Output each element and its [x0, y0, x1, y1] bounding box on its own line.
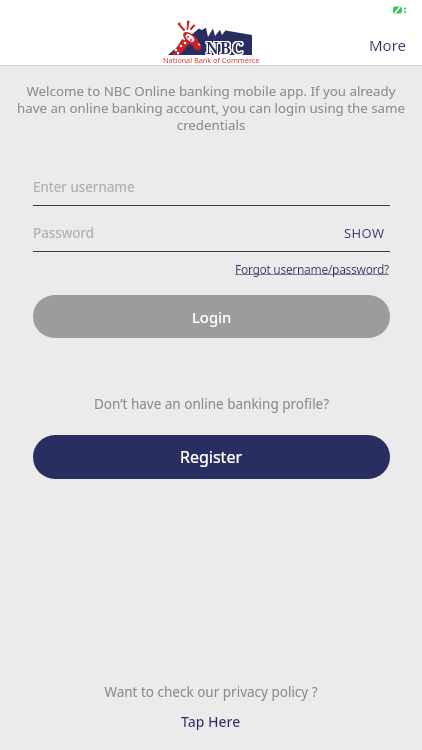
- button[interactable]: Tap Here: [181, 712, 241, 731]
- button[interactable]: Password: [33, 224, 344, 242]
- staticText: Register: [180, 446, 243, 468]
- staticText: SHOW: [344, 224, 385, 242]
- button[interactable]: Enter username: [33, 178, 390, 196]
- button[interactable]: Forgot username/password?: [235, 261, 390, 277]
- staticText: Want to check our privacy policy ?: [0, 683, 422, 701]
- staticText: NBC: [207, 36, 246, 58]
- staticText: Password: [33, 224, 95, 242]
- staticText: NBC: [205, 38, 244, 60]
- staticText: Enter username: [33, 178, 135, 196]
- button[interactable]: Register: [33, 435, 390, 479]
- staticText: NBC: [206, 36, 245, 58]
- staticText: Forgot username/password?: [235, 261, 390, 277]
- button[interactable]: SHOW: [344, 224, 385, 242]
- staticText: Don’t have an online banking profile?: [33, 395, 390, 413]
- staticText: Tap Here: [181, 712, 241, 731]
- staticText: NBC: [207, 38, 246, 60]
- staticText: NBC: [205, 36, 244, 58]
- staticText: Welcome to NBC Online banking mobile app…: [0, 82, 422, 134]
- staticText: Login: [192, 307, 232, 327]
- staticText: NBC: [206, 38, 245, 60]
- staticText: NBC: [206, 37, 245, 59]
- button[interactable]: More: [369, 35, 407, 55]
- staticText: NBC: [207, 37, 246, 59]
- staticText: National Bank of Commerce: [163, 55, 260, 65]
- button[interactable]: Login: [33, 295, 390, 338]
- staticText: More: [369, 35, 407, 55]
- staticText: NBC: [205, 37, 244, 59]
